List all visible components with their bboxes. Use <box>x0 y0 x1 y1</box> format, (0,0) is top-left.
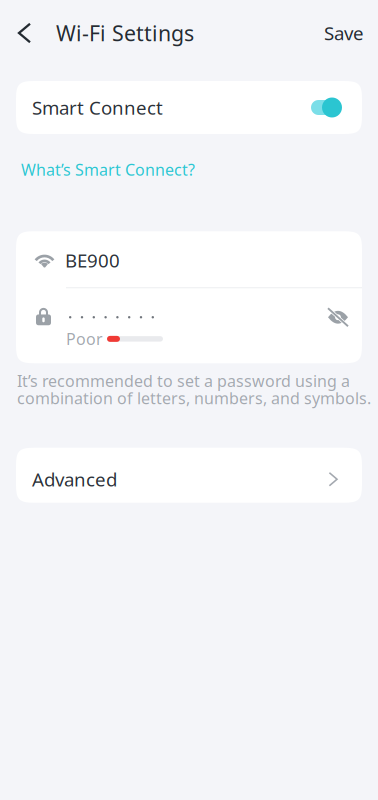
button[interactable]: Advanced <box>16 448 362 503</box>
staticText: Poor <box>66 328 103 349</box>
button[interactable]: Smart Connect <box>16 81 362 134</box>
staticText: Advanced <box>32 467 117 492</box>
staticText: Wi-Fi Settings <box>56 19 194 47</box>
staticText: Smart Connect <box>32 95 163 120</box>
staticText: BE900 <box>65 248 120 273</box>
button[interactable]: What’s Smart Connect? <box>21 159 195 180</box>
button[interactable]: Back <box>0 0 56 66</box>
staticText: What’s Smart Connect? <box>21 159 195 180</box>
staticText: It’s recommended to set a password using… <box>17 370 350 391</box>
button[interactable]: Save <box>310 0 378 66</box>
staticText: Save <box>324 21 364 45</box>
button[interactable]: Show password <box>328 307 348 327</box>
staticText: combination of letters, numbers, and sym… <box>17 387 371 409</box>
